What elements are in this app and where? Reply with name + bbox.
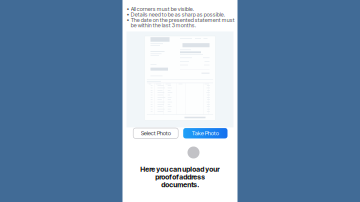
button[interactable]: Select Photo bbox=[133, 128, 178, 138]
staticText: Here you can upload your proof of addres… bbox=[140, 165, 220, 189]
staticText: Details need to be as sharp as possible. bbox=[131, 12, 225, 17]
staticText: • bbox=[126, 12, 129, 17]
staticText: • bbox=[126, 6, 129, 12]
staticText: Take Photo bbox=[192, 130, 219, 136]
staticText: All corners must be visible. bbox=[131, 6, 194, 12]
staticText: • bbox=[126, 17, 129, 23]
staticText: Select Photo bbox=[141, 130, 171, 136]
staticText: The date on the presented statement must… bbox=[131, 17, 235, 28]
button[interactable]: Take Photo bbox=[183, 128, 227, 138]
